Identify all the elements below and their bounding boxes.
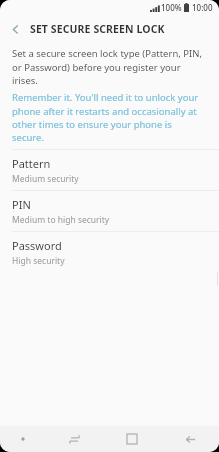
button[interactable]: Pattern (0, 150, 219, 190)
staticText: 10:00 (192, 2, 213, 13)
button[interactable]: Recents (45, 426, 103, 452)
staticText: 100% (161, 2, 182, 13)
staticText: Set a secure screen lock type (Pattern, … (12, 47, 205, 86)
button[interactable]: Assistant (0, 426, 45, 452)
staticText: High security (12, 255, 65, 267)
staticText: Pattern (12, 156, 51, 171)
button[interactable]: Back (161, 426, 219, 452)
button[interactable]: PIN (0, 191, 219, 231)
button[interactable]: Back (0, 15, 30, 43)
staticText: Remember it. You'll need it to unlock yo… (12, 91, 205, 143)
staticText: Medium security (12, 173, 79, 185)
button[interactable]: Password (0, 232, 219, 272)
staticText: PIN (12, 197, 31, 212)
button[interactable]: Home (103, 426, 161, 452)
staticText: Medium to high security (12, 214, 110, 226)
staticText: SET SECURE SCREEN LOCK (30, 22, 165, 36)
staticText: Password (12, 238, 62, 253)
